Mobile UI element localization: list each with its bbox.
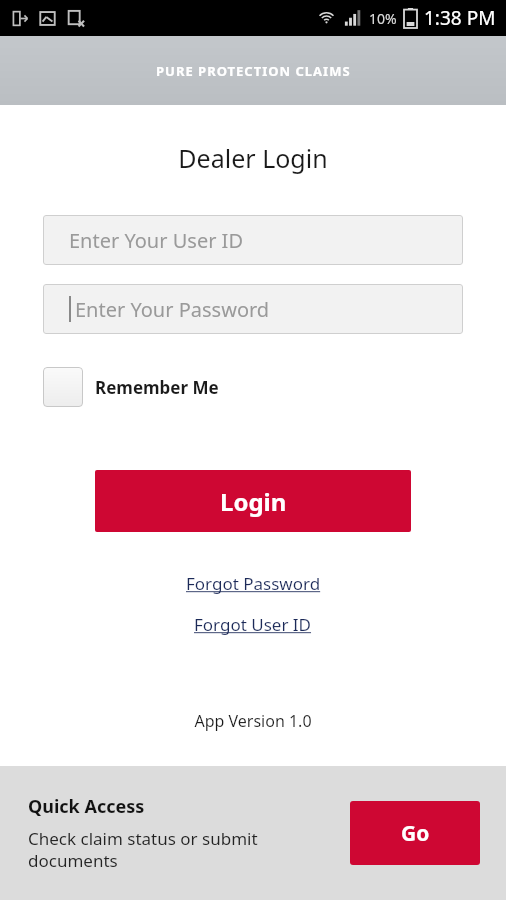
staticText: Forgot User ID	[194, 613, 312, 636]
staticText: Enter Your User ID	[69, 227, 243, 254]
staticText: Remember Me	[95, 376, 219, 399]
button[interactable]: Forgot User ID	[188, 611, 318, 638]
staticText: Quick Access	[28, 794, 145, 819]
staticText: App Version 1.0	[0, 710, 506, 732]
staticText: Check claim status or submit documents	[28, 827, 258, 872]
button[interactable]: Login	[95, 470, 411, 532]
staticText: 10%	[369, 9, 397, 28]
button[interactable]: Remember Me	[43, 367, 219, 407]
button[interactable]: Forgot Password	[180, 570, 327, 597]
staticText: Dealer Login	[0, 141, 506, 175]
staticText: 1:38 PM	[424, 5, 496, 31]
staticText: Go	[401, 819, 430, 848]
button[interactable]: Enter Your User ID	[43, 215, 463, 265]
button[interactable]: Go	[350, 801, 480, 865]
staticText: Login	[220, 485, 287, 518]
staticText: Forgot Password	[186, 572, 321, 595]
button[interactable]: Enter Your Password	[43, 284, 463, 334]
staticText: Enter Your Password	[75, 296, 270, 323]
staticText: PURE PROTECTION CLAIMS	[156, 62, 351, 80]
